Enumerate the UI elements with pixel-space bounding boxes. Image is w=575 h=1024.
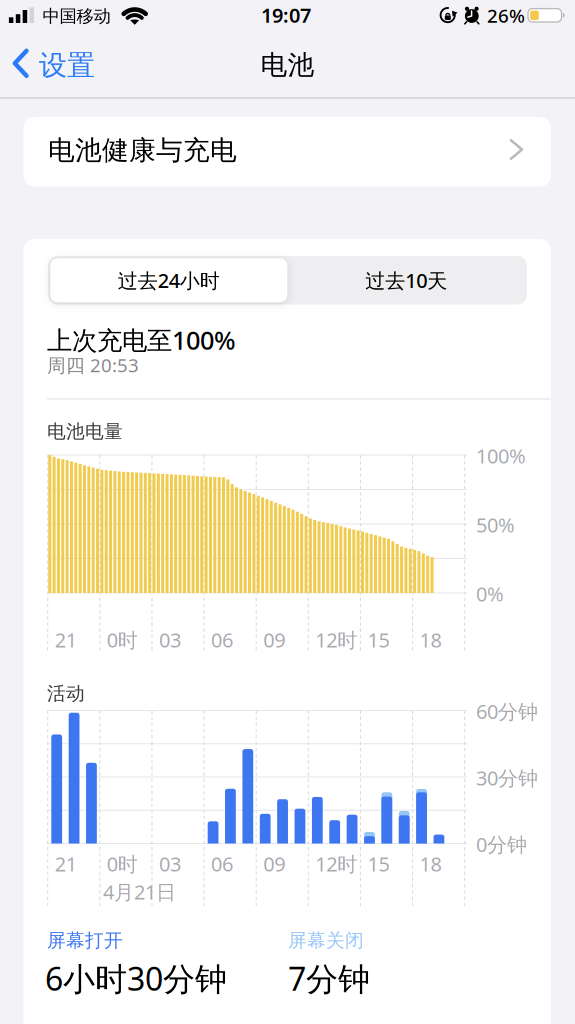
staticText: 屏幕关闭 bbox=[288, 929, 364, 952]
staticText: 设置 bbox=[39, 48, 95, 83]
staticText: 03 bbox=[159, 850, 181, 877]
staticText: 6小时30分钟 bbox=[45, 957, 227, 999]
staticText: 过去10天 bbox=[365, 267, 447, 294]
staticText: 0% bbox=[476, 580, 504, 607]
staticText: 4月21日 bbox=[103, 878, 176, 905]
button[interactable]: 电池健康与充电 bbox=[23, 117, 551, 186]
staticText: 15 bbox=[367, 626, 389, 653]
button[interactable]: 返回设置 bbox=[0, 43, 104, 83]
staticText: 12时 bbox=[315, 626, 357, 653]
staticText: 19:07 bbox=[261, 2, 311, 28]
staticText: 0时 bbox=[107, 850, 138, 877]
staticText: 电池电量 bbox=[47, 420, 123, 443]
staticText: 12时 bbox=[315, 850, 357, 877]
staticText: 09 bbox=[263, 626, 285, 653]
staticText: 06 bbox=[211, 850, 233, 877]
staticText: 09 bbox=[263, 850, 285, 877]
staticText: 100% bbox=[476, 442, 526, 469]
staticText: 26% bbox=[487, 3, 525, 28]
staticText: 18 bbox=[420, 850, 442, 877]
staticText: 21 bbox=[55, 626, 77, 653]
staticText: 电池 bbox=[260, 49, 314, 81]
staticText: 15 bbox=[367, 850, 389, 877]
staticText: 电池健康与充电 bbox=[48, 134, 237, 167]
staticText: 过去24小时 bbox=[118, 267, 220, 294]
staticText: 21 bbox=[55, 850, 77, 877]
staticText: 18 bbox=[420, 626, 442, 653]
staticText: 03 bbox=[159, 626, 181, 653]
staticText: 50% bbox=[476, 511, 515, 538]
button[interactable]: 过去10天 bbox=[288, 258, 525, 302]
staticText: 06 bbox=[211, 626, 233, 653]
staticText: 屏幕打开 bbox=[47, 929, 123, 952]
button[interactable]: 过去24小时 bbox=[50, 258, 287, 302]
staticText: 60分钟 bbox=[476, 698, 538, 725]
staticText: 中国移动 bbox=[42, 5, 110, 27]
staticText: 0分钟 bbox=[476, 831, 527, 858]
staticText: 活动 bbox=[47, 682, 85, 705]
staticText: 7分钟 bbox=[288, 957, 370, 999]
staticText: 周四 20:53 bbox=[47, 352, 139, 377]
staticText: 0时 bbox=[107, 626, 138, 653]
staticText: 上次充电至100% bbox=[47, 323, 236, 357]
staticText: 30分钟 bbox=[476, 764, 538, 791]
